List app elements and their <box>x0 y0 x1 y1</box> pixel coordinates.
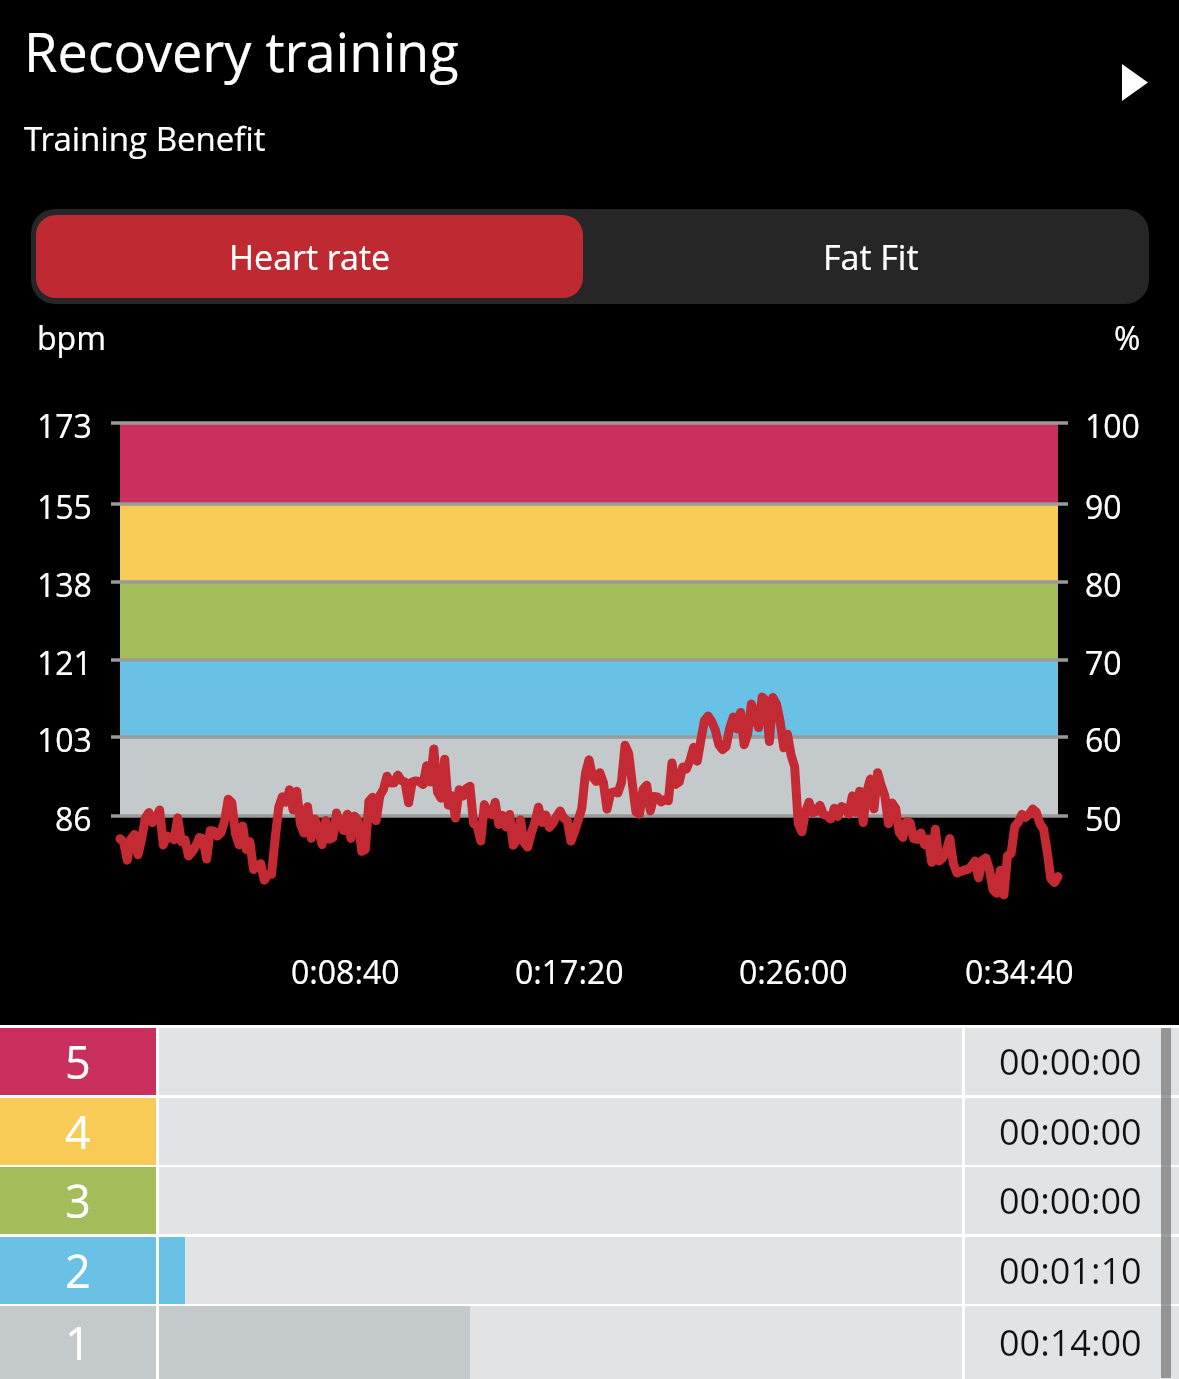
staticText: Training Benefit <box>24 116 266 161</box>
staticText: % <box>1114 316 1141 360</box>
staticText: Recovery training <box>24 14 459 88</box>
staticText: 70 <box>1085 641 1122 685</box>
button[interactable]: 1 <box>0 1306 1179 1379</box>
staticText: 4 <box>65 1101 91 1162</box>
staticText: 00:14:00 <box>999 1318 1142 1367</box>
staticText: 138 <box>37 563 92 607</box>
staticText: 86 <box>55 797 92 841</box>
staticText: 50 <box>1085 797 1122 841</box>
staticText: 0:08:40 <box>291 950 400 994</box>
staticText: 00:00:00 <box>999 1107 1142 1156</box>
staticText: 2 <box>65 1240 91 1301</box>
staticText: 0:34:40 <box>965 950 1074 994</box>
button[interactable]: 2 <box>0 1237 1179 1304</box>
staticText: 155 <box>37 485 92 529</box>
button[interactable]: 3 <box>0 1167 1179 1234</box>
staticText: 00:00:00 <box>999 1176 1142 1225</box>
staticText: Heart rate <box>229 234 390 280</box>
staticText: 173 <box>37 404 92 448</box>
button[interactable]: Play <box>1093 40 1177 124</box>
staticText: 0:17:20 <box>515 950 624 994</box>
staticText: 1 <box>65 1312 91 1373</box>
staticText: 100 <box>1085 404 1140 448</box>
staticText: bpm <box>37 316 106 360</box>
button[interactable]: Heart rate <box>36 215 583 298</box>
staticText: 00:01:10 <box>999 1246 1142 1295</box>
staticText: 90 <box>1085 485 1122 529</box>
staticText: 5 <box>65 1031 91 1092</box>
button[interactable]: Fat Fit <box>588 209 1149 304</box>
staticText: 121 <box>37 641 92 685</box>
staticText: 103 <box>37 718 92 762</box>
staticText: 00:00:00 <box>999 1037 1142 1086</box>
staticText: Fat Fit <box>823 234 919 280</box>
button[interactable]: 5 <box>0 1028 1179 1095</box>
staticText: 3 <box>65 1170 91 1231</box>
staticText: 80 <box>1085 563 1122 607</box>
button[interactable]: 4 <box>0 1098 1179 1165</box>
staticText: 60 <box>1085 718 1122 762</box>
staticText: 0:26:00 <box>739 950 848 994</box>
